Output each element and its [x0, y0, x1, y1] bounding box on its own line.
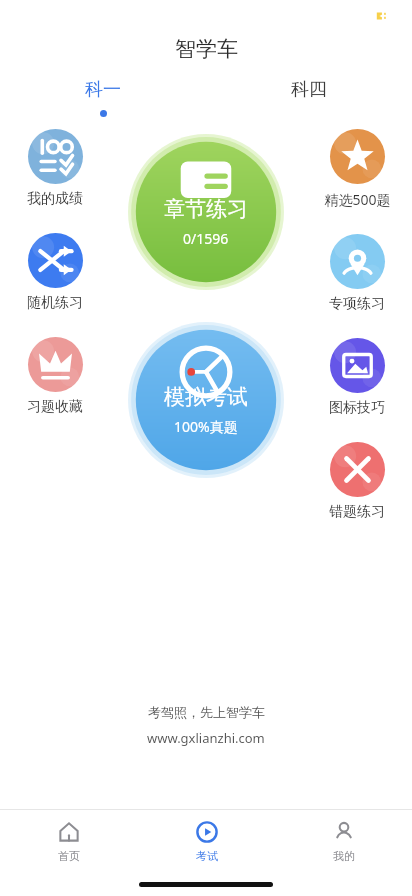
staticText: 精选500题	[324, 190, 391, 209]
button[interactable]: 图标技巧	[302, 338, 412, 417]
button[interactable]: 模拟考试	[128, 322, 284, 478]
staticText: 考驾照，先上智学车	[148, 704, 265, 720]
staticText: 考试	[196, 849, 218, 863]
button[interactable]: 首页	[0, 810, 138, 872]
staticText: 章节练习	[164, 196, 248, 222]
staticText: 智学车	[175, 36, 238, 62]
staticText: 模拟考试	[164, 384, 248, 410]
staticText: 错题练习	[329, 503, 385, 521]
staticText: 100%真题	[174, 417, 238, 436]
staticText: www.gxlianzhi.com	[147, 729, 265, 747]
button[interactable]: 错题练习	[302, 442, 412, 521]
button[interactable]: 习题收藏	[0, 337, 110, 416]
staticText: 随机练习	[27, 294, 83, 312]
button[interactable]: 我的成绩	[0, 129, 110, 208]
staticText: 我的	[333, 849, 355, 863]
staticText: 科四	[291, 78, 327, 101]
button[interactable]: 专项练习	[302, 234, 412, 313]
button[interactable]: 随机练习	[0, 233, 110, 312]
other: 我的	[332, 820, 356, 844]
button[interactable]: 章节练习	[128, 134, 284, 290]
button[interactable]: 精选500题	[302, 129, 412, 209]
button[interactable]: 我的	[275, 810, 412, 872]
staticText: 习题收藏	[27, 398, 83, 416]
staticText: 首页	[58, 849, 80, 863]
staticText: 0/1596	[183, 229, 229, 248]
button[interactable]: 考试	[138, 810, 275, 872]
staticText: 我的成绩	[27, 190, 83, 208]
other: 首页	[57, 820, 81, 844]
button[interactable]: 科一	[0, 78, 206, 126]
staticText: 专项练习	[329, 295, 385, 313]
staticText: 科一	[85, 78, 121, 101]
other: 考试	[195, 820, 219, 844]
button[interactable]: 科四	[206, 78, 412, 126]
staticText: 图标技巧	[329, 399, 385, 417]
